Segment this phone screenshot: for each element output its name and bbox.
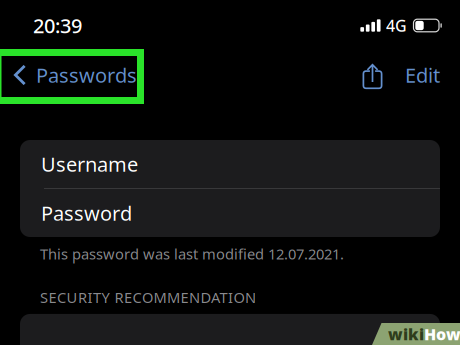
button[interactable]: Passwords — [0, 55, 146, 95]
staticText: 20:39 — [33, 12, 82, 39]
staticText: This password was last modified 12.07.20… — [40, 244, 344, 263]
staticText: wiki — [388, 323, 424, 345]
button[interactable]: Password — [20, 189, 440, 237]
staticText: Password — [41, 200, 132, 226]
button[interactable]: Security recommendation — [0, 307, 460, 345]
button[interactable]: Edit — [385, 53, 460, 97]
staticText: How — [424, 323, 460, 345]
staticText: Edit — [405, 62, 440, 88]
staticText: Passwords — [36, 62, 137, 88]
staticText: Username — [41, 151, 138, 177]
staticText: 4G — [386, 15, 407, 36]
button[interactable]: Share — [356, 53, 385, 97]
button[interactable]: Username — [20, 140, 440, 188]
staticText: SECURITY RECOMMENDATION — [40, 287, 256, 307]
